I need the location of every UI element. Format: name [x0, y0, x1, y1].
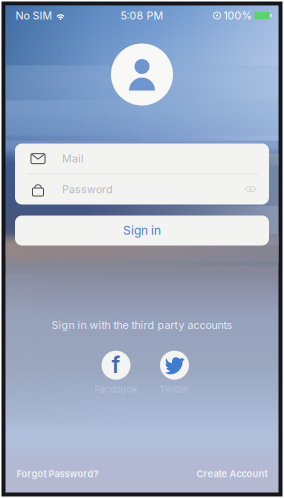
- button[interactable]: Create Account: [196, 468, 267, 479]
- staticText: 5:08 PM: [120, 9, 163, 22]
- staticText: Create Account: [196, 468, 267, 479]
- staticText: No SIM: [15, 9, 52, 22]
- staticText: 100%: [223, 9, 251, 22]
- staticText: f: [111, 351, 120, 378]
- staticText: Sign in: [123, 223, 161, 238]
- staticText: Sign in with the third party accounts: [51, 319, 232, 332]
- staticText: Mail: [62, 152, 84, 165]
- staticText: Facebook: [94, 384, 137, 395]
- button[interactable]: Sign in: [15, 215, 269, 245]
- button[interactable]: Twitter: [159, 351, 189, 395]
- staticText: Twitter: [159, 384, 189, 395]
- staticText: Password: [62, 183, 113, 196]
- button[interactable]: f: [94, 351, 137, 395]
- staticText: Forgot Password?: [16, 468, 98, 479]
- button[interactable]: Forgot Password?: [16, 468, 98, 479]
